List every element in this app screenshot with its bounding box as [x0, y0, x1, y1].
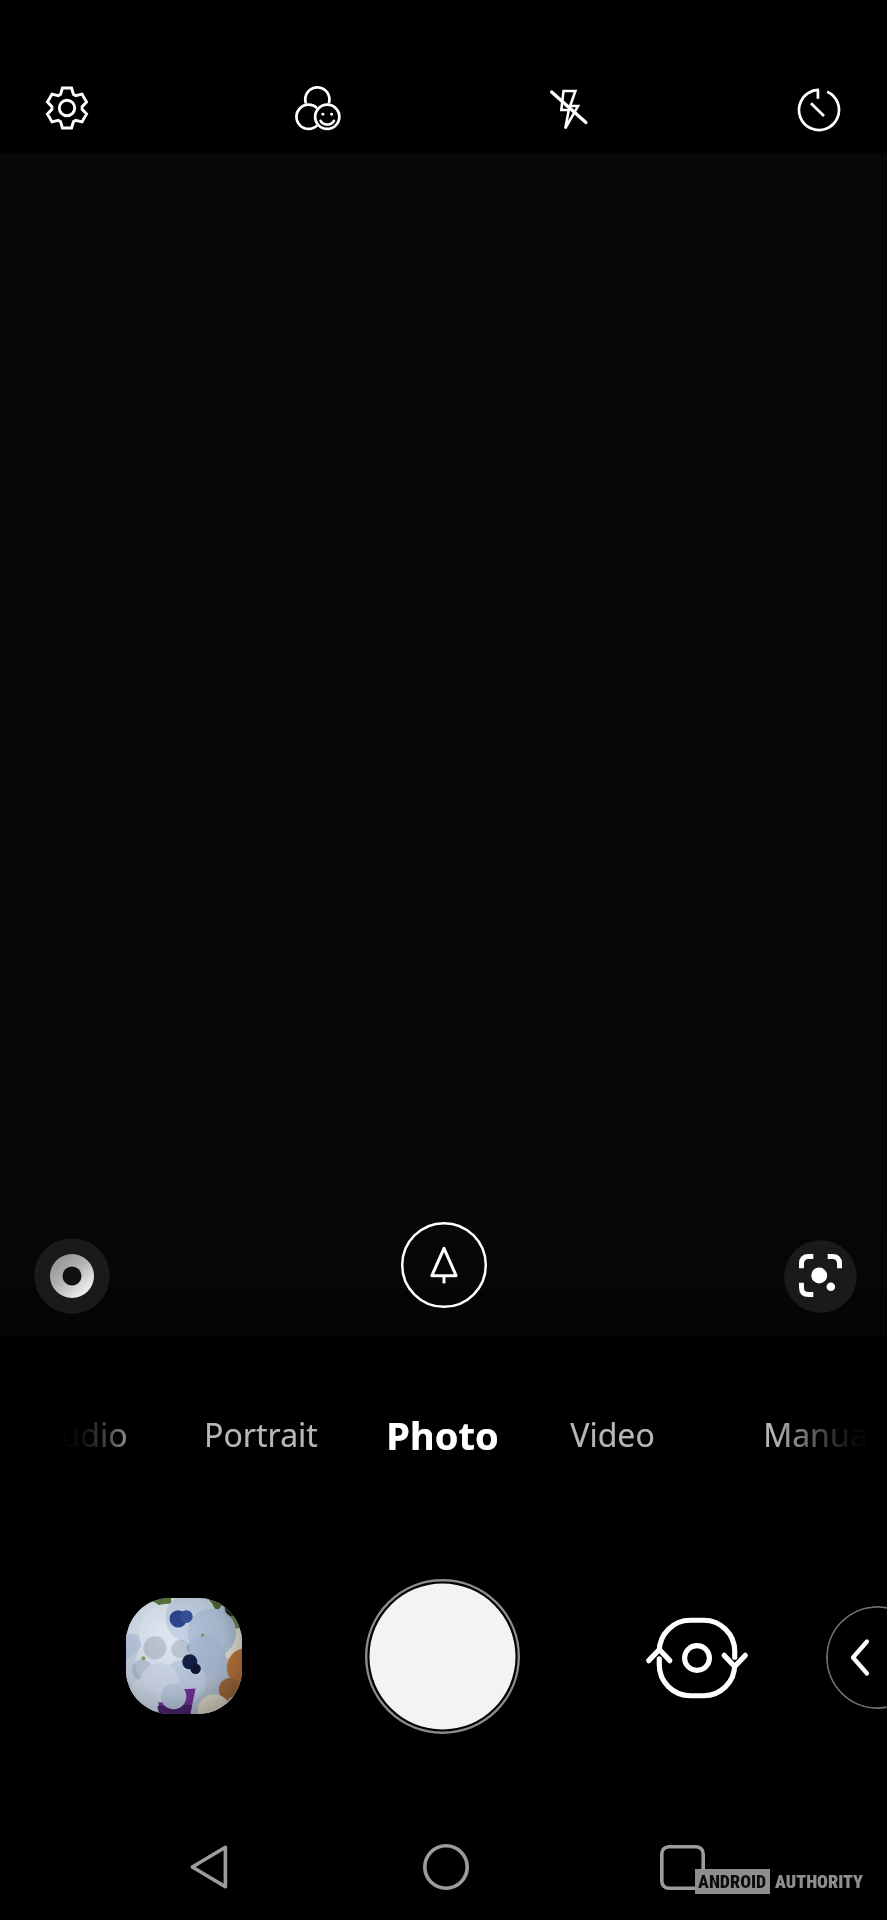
staticText: Manual: [763, 1413, 876, 1457]
button[interactable]: Google Lens: [784, 1240, 857, 1313]
button[interactable]: Studio: [0, 1398, 194, 1472]
button[interactable]: AI scene detection: [393, 1214, 495, 1316]
staticText: ANDROID: [698, 1871, 767, 1892]
button[interactable]: Photo: [327, 1398, 557, 1472]
button[interactable]: Shutter: [365, 1579, 520, 1734]
staticText: AUTHORITY: [775, 1871, 864, 1892]
staticText: Portrait: [204, 1413, 318, 1457]
button[interactable]: Portrait: [146, 1398, 376, 1472]
button[interactable]: Filters: [280, 70, 356, 146]
staticText: Photo: [386, 1409, 499, 1461]
button[interactable]: Back: [171, 1827, 251, 1907]
button[interactable]: Recent apps: [642, 1827, 722, 1907]
staticText: Studio: [31, 1413, 128, 1457]
button[interactable]: Manual: [704, 1398, 887, 1472]
staticText: Video: [570, 1413, 655, 1457]
button[interactable]: Gallery: [126, 1598, 242, 1714]
button[interactable]: Aperture: [34, 1238, 110, 1314]
button[interactable]: Timer: [781, 70, 857, 146]
button[interactable]: Home: [406, 1827, 486, 1907]
button[interactable]: Switch camera: [637, 1598, 757, 1718]
button[interactable]: Settings: [29, 70, 105, 146]
button[interactable]: More options: [826, 1606, 887, 1709]
button[interactable]: Video: [497, 1398, 727, 1472]
button[interactable]: Flash off: [531, 70, 607, 146]
